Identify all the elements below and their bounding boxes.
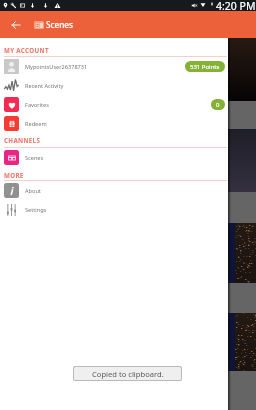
button[interactable]: Settings (0, 200, 228, 219)
staticText: 0 (216, 101, 220, 109)
button[interactable]: MypointsUser26378731 (0, 57, 228, 76)
staticText: Copied to clipboard. (92, 369, 164, 379)
staticText: Scenes (25, 154, 44, 162)
staticText: 531 Points (190, 63, 220, 71)
staticText: 4:20 PM (216, 0, 256, 10)
button[interactable]: Favorites (0, 95, 228, 114)
staticText: About (25, 187, 41, 195)
staticText: MY ACCOUNT (4, 46, 49, 54)
staticText: MORE (4, 171, 24, 179)
button[interactable]: Back (4, 11, 28, 38)
staticText: MypointsUser26378731 (25, 63, 88, 71)
button[interactable]: Recent Activity (0, 76, 228, 95)
button[interactable]: Redeem (0, 114, 228, 133)
staticText: Scenes (46, 19, 74, 30)
button[interactable]: About (0, 181, 228, 200)
staticText: Recent Activity (25, 82, 64, 90)
staticText: Settings (25, 206, 47, 214)
button[interactable]: Scenes (0, 148, 228, 167)
staticText: CHANNELS (4, 136, 41, 144)
staticText: Redeem (25, 120, 47, 128)
staticText: Favorites (25, 101, 49, 109)
